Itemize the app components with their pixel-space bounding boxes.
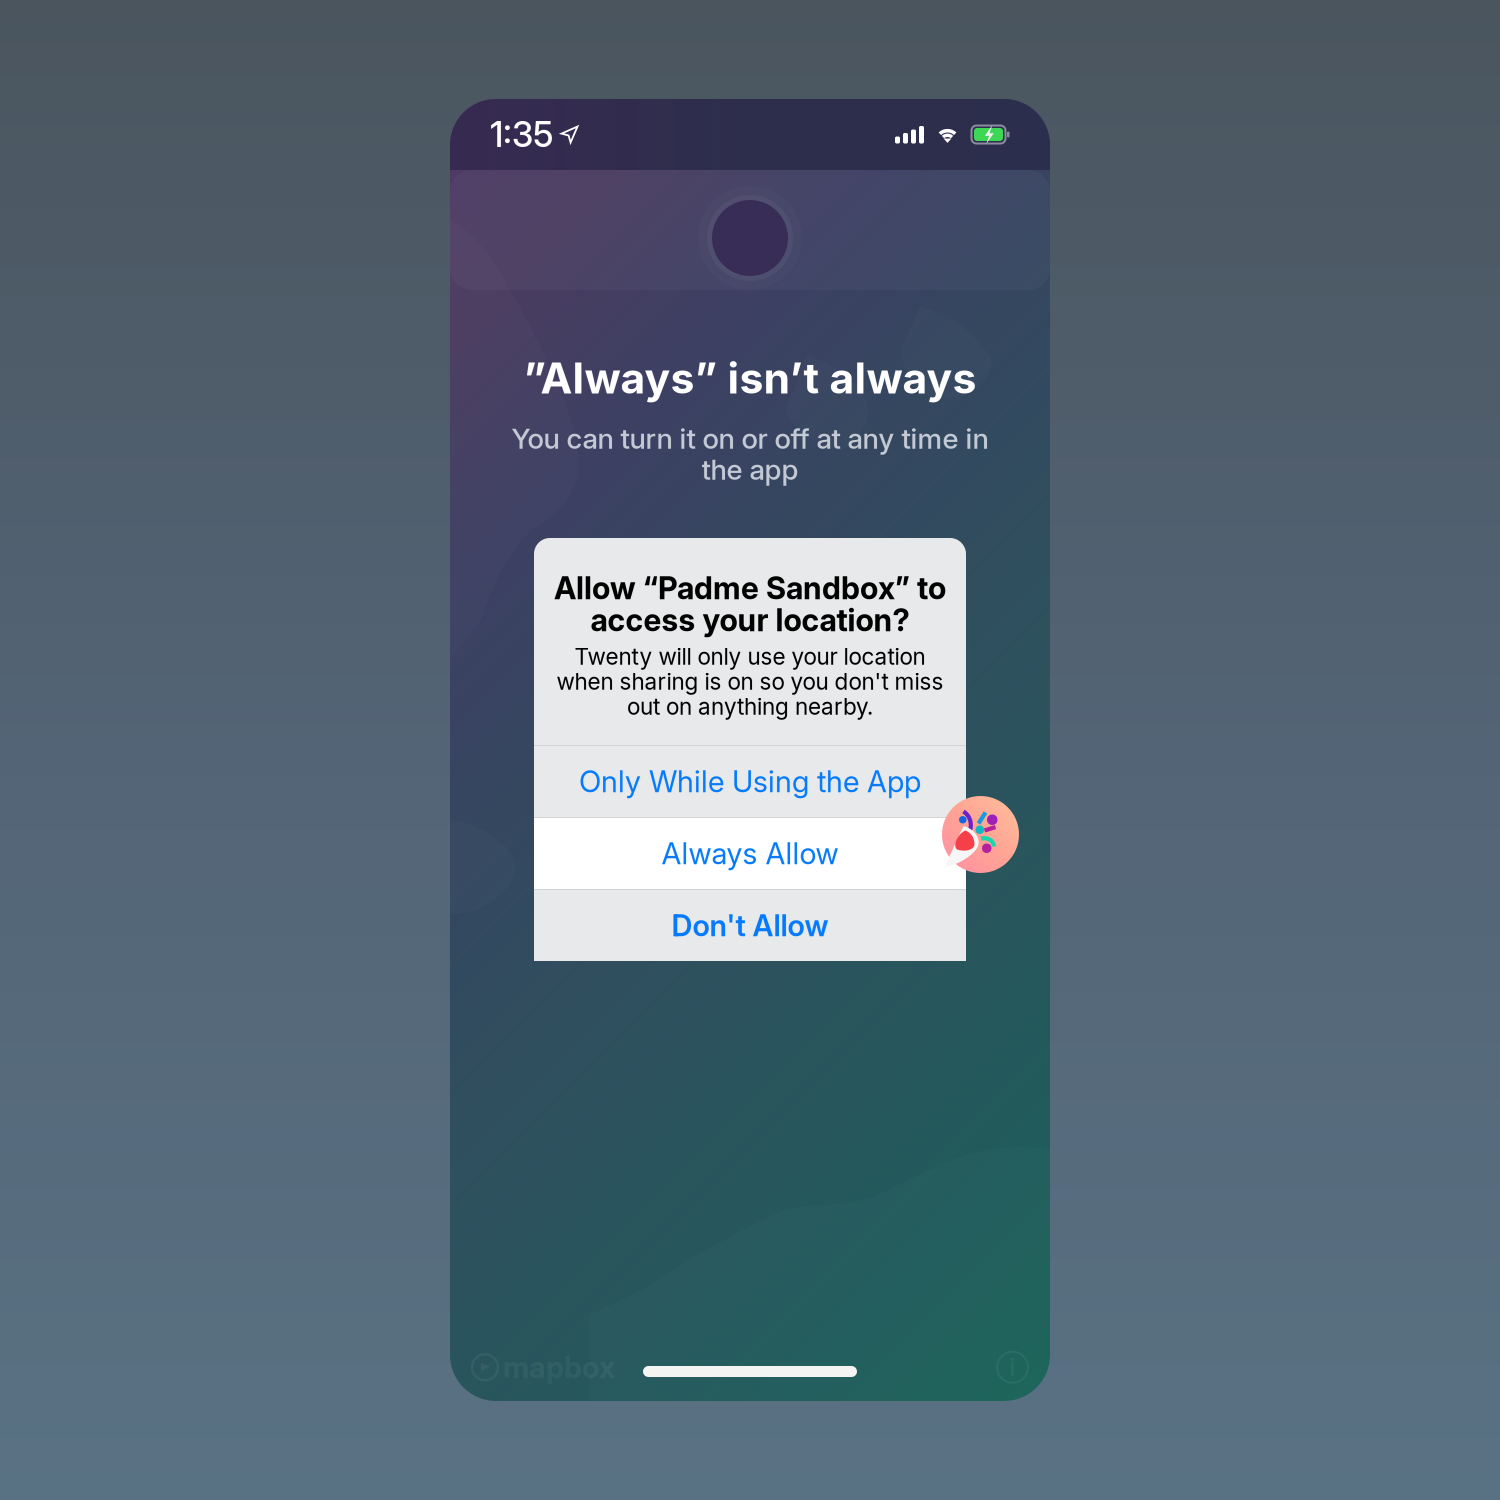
staticText: out on anything nearby. — [627, 693, 873, 720]
staticText: 1:35 — [490, 113, 553, 155]
staticText: mapbox — [503, 1349, 615, 1385]
staticText: Allow “Padme Sandbox” to — [554, 569, 946, 606]
button[interactable]: Mapbox — [472, 1349, 615, 1385]
button[interactable]: Don't Allow — [534, 890, 966, 961]
staticText: ”Always” isn’t always — [523, 352, 976, 404]
staticText: Twenty will only use your location — [574, 643, 925, 670]
staticText: i — [1009, 1353, 1015, 1381]
staticText: access your location? — [590, 601, 909, 638]
staticText: the app — [701, 453, 798, 486]
button[interactable]: Only While Using the App — [534, 746, 966, 817]
staticText: when sharing is on so you don't miss — [556, 668, 943, 695]
staticText: Only While Using the App — [579, 764, 921, 799]
staticText: Don't Allow — [671, 908, 828, 943]
button[interactable]: Map attribution info — [997, 1352, 1028, 1383]
staticText: You can turn it on or off at any time in — [511, 422, 988, 455]
staticText: Always Allow — [661, 836, 838, 871]
button[interactable]: Always Allow — [534, 818, 966, 889]
